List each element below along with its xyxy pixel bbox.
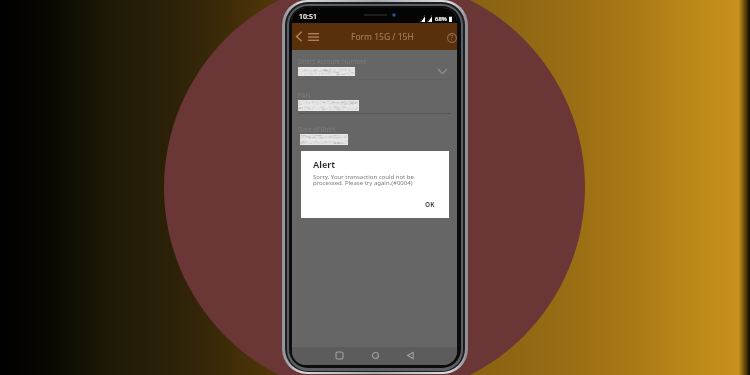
button[interactable]: Back (292, 27, 306, 46)
staticText: 10:51 (299, 12, 317, 22)
button[interactable]: Help (444, 30, 457, 45)
staticText: processed. Please try again.(#0004) (313, 179, 413, 187)
button[interactable]: OK (420, 198, 440, 210)
staticText: 68% (435, 15, 447, 23)
button[interactable]: Recents (330, 346, 348, 364)
staticText: ? (450, 33, 454, 43)
staticText: Form 15G / 15H (351, 31, 414, 43)
button[interactable]: Home (366, 346, 384, 364)
staticText: OK (425, 200, 435, 209)
staticText: Select Account Number (298, 57, 367, 65)
staticText: PAN (298, 91, 311, 99)
button[interactable]: Menu (306, 27, 321, 46)
staticText: Date of Birth (298, 125, 336, 133)
staticText: Alert (313, 158, 336, 170)
staticText: Sorry. Your transaction could not be (313, 173, 414, 181)
button[interactable]: Back (401, 346, 419, 364)
